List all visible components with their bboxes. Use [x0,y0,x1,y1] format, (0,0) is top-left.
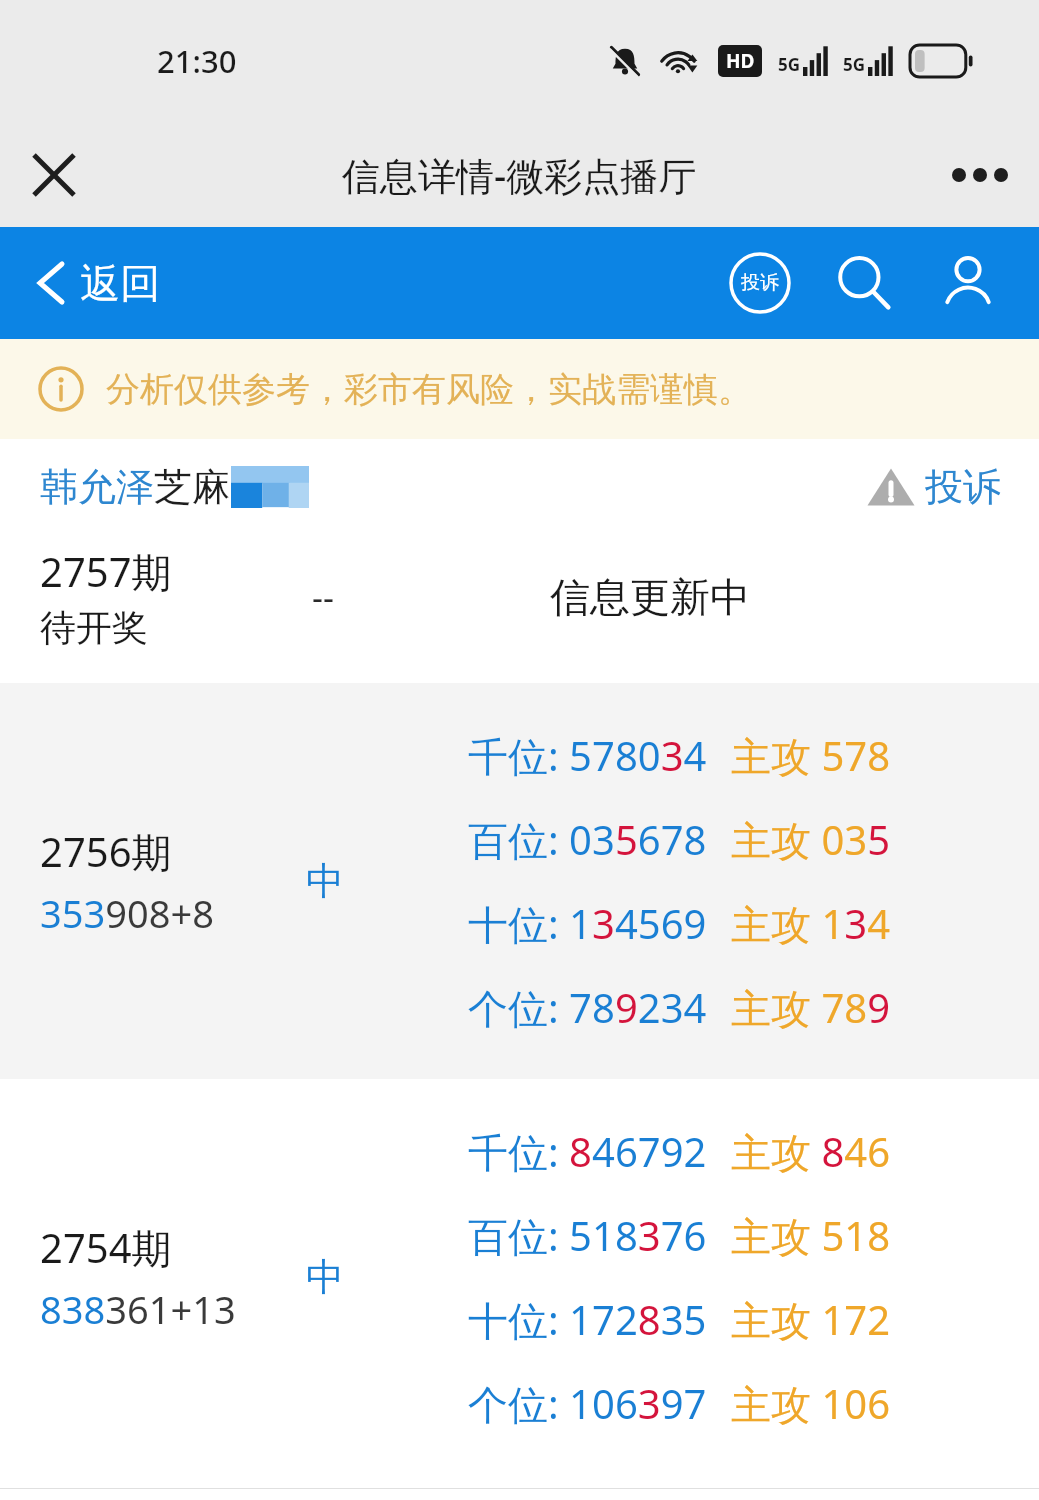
staticText: 韩允泽芝麻 [40,463,230,511]
staticText: HD [726,48,755,74]
button[interactable]: 返回 [34,250,166,316]
staticText: 中 [306,857,344,905]
staticText: 千位: 846792 [468,1124,707,1179]
staticText: 主攻 518 [731,1208,891,1263]
button[interactable]: Profile [933,248,1003,318]
staticText: 分析仅供参考，彩市有风险，实战需谨慎。 [106,368,752,411]
staticText: 中 [306,1253,344,1301]
staticText: -- [312,574,334,620]
button[interactable]: 韩允泽芝麻 [40,463,309,511]
staticText: 主攻 846 [731,1124,891,1179]
staticText: 353908+8 [40,887,214,939]
staticText: 838361+13 [40,1283,236,1335]
staticText: 主攻 106 [731,1376,891,1431]
staticText: 主攻 578 [731,728,891,783]
staticText: 返回 [80,258,160,308]
button[interactable]: Close [22,143,86,207]
staticText: 2756期 [40,824,172,879]
staticText: 待开奖 [40,605,148,650]
staticText: 个位: 789234 [468,980,707,1035]
staticText: 21:30 [157,40,237,82]
staticText: 5G [778,53,801,76]
staticText: 信息详情-微彩点播厅 [342,149,697,201]
button[interactable]: 投诉 [867,463,1001,511]
staticText: 十位: 134569 [468,896,707,951]
staticText: 千位: 578034 [468,728,707,783]
staticText: 2757期 [40,544,172,599]
staticText: 个位: 106397 [468,1376,707,1431]
staticText: 百位: 035678 [468,812,707,867]
button[interactable]: Search [829,248,899,318]
button[interactable]: More options [945,140,1015,210]
staticText: 十位: 172835 [468,1292,707,1347]
staticText: 主攻 789 [731,980,891,1035]
staticText: 信息更新中 [550,572,750,622]
staticText: 投诉 [741,271,779,295]
staticText: 主攻 035 [731,812,891,867]
staticText: 主攻 172 [731,1292,891,1347]
staticText: 2754期 [40,1220,172,1275]
staticText: 百位: 518376 [468,1208,707,1263]
staticText: 主攻 134 [731,896,891,951]
button[interactable]: 投诉 Complain [725,248,795,318]
staticText: 5G [843,53,866,76]
staticText: 投诉 [925,463,1001,511]
